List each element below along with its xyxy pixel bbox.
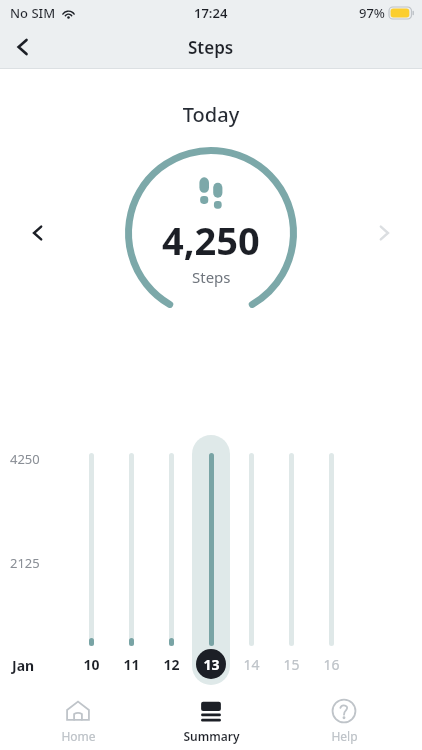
staticText: Home: [61, 728, 96, 744]
staticText: 12: [163, 655, 180, 674]
staticText: 10: [83, 655, 100, 674]
staticText: 11: [123, 655, 140, 674]
button[interactable]: 11: [115, 648, 147, 680]
button[interactable]: 14: [235, 648, 267, 680]
staticText: Jan: [12, 656, 35, 675]
staticText: 4250: [10, 450, 40, 468]
staticText: Help: [331, 728, 358, 744]
staticText: 14: [243, 655, 260, 674]
staticText: No SIM: [10, 4, 56, 22]
button[interactable]: Home: [23, 690, 133, 744]
staticText: Summary: [183, 728, 240, 744]
staticText: 15: [283, 655, 300, 674]
button[interactable]: Previous day: [16, 211, 60, 255]
button[interactable]: 10: [75, 648, 107, 680]
button[interactable]: 15: [275, 648, 307, 680]
staticText: Steps: [192, 267, 231, 287]
button[interactable]: Next day: [362, 211, 406, 255]
button[interactable]: 16: [315, 648, 347, 680]
button[interactable]: 13: [195, 648, 227, 680]
staticText: Steps: [188, 36, 234, 59]
button[interactable]: 12: [155, 648, 187, 680]
staticText: 2125: [10, 554, 40, 572]
staticText: 13: [203, 655, 220, 674]
staticText: 97%: [359, 4, 385, 22]
button[interactable]: Help: [289, 690, 399, 744]
button[interactable]: Summary: [156, 690, 266, 744]
staticText: Today: [0, 101, 422, 128]
button[interactable]: Back: [0, 26, 46, 68]
staticText: 16: [323, 655, 340, 674]
staticText: 17:24: [194, 4, 228, 22]
staticText: 4,250: [162, 214, 260, 266]
